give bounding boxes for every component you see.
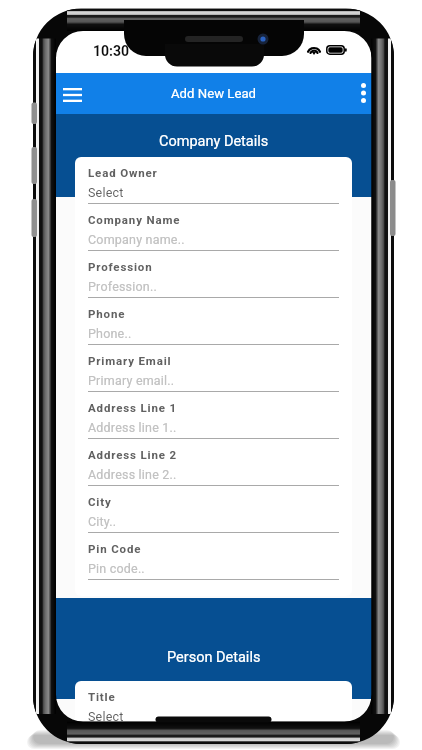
staticText: Address Line 2 xyxy=(88,448,177,461)
button[interactable]: Open navigation menu xyxy=(56,73,89,114)
staticText: Primary Email xyxy=(88,354,172,367)
staticText: Phone xyxy=(88,307,126,320)
staticText: Select xyxy=(88,709,124,724)
staticText: Lead Owner xyxy=(88,166,158,179)
staticText: Select xyxy=(88,185,124,200)
staticText: Company Name xyxy=(88,213,181,226)
staticText: Pin code.. xyxy=(88,561,145,576)
staticText: Pin Code xyxy=(88,542,142,555)
button[interactable]: More options xyxy=(350,73,372,114)
staticText: Person Details xyxy=(167,649,261,666)
staticText: Add New Lead xyxy=(171,86,257,101)
staticText: Profession.. xyxy=(88,279,157,294)
staticText: City.. xyxy=(88,514,117,529)
staticText: Address line 1.. xyxy=(88,420,177,435)
staticText: Company Details xyxy=(159,133,269,150)
staticText: Address line 2.. xyxy=(88,467,177,482)
staticText: Phone.. xyxy=(88,326,132,341)
staticText: Company name.. xyxy=(88,232,185,247)
staticText: Address Line 1 xyxy=(88,401,177,414)
staticText: Title xyxy=(88,690,116,703)
staticText: Profession xyxy=(88,260,153,273)
staticText: Primary email.. xyxy=(88,373,175,388)
staticText: 10:30 xyxy=(93,43,130,59)
staticText: City xyxy=(88,495,112,508)
